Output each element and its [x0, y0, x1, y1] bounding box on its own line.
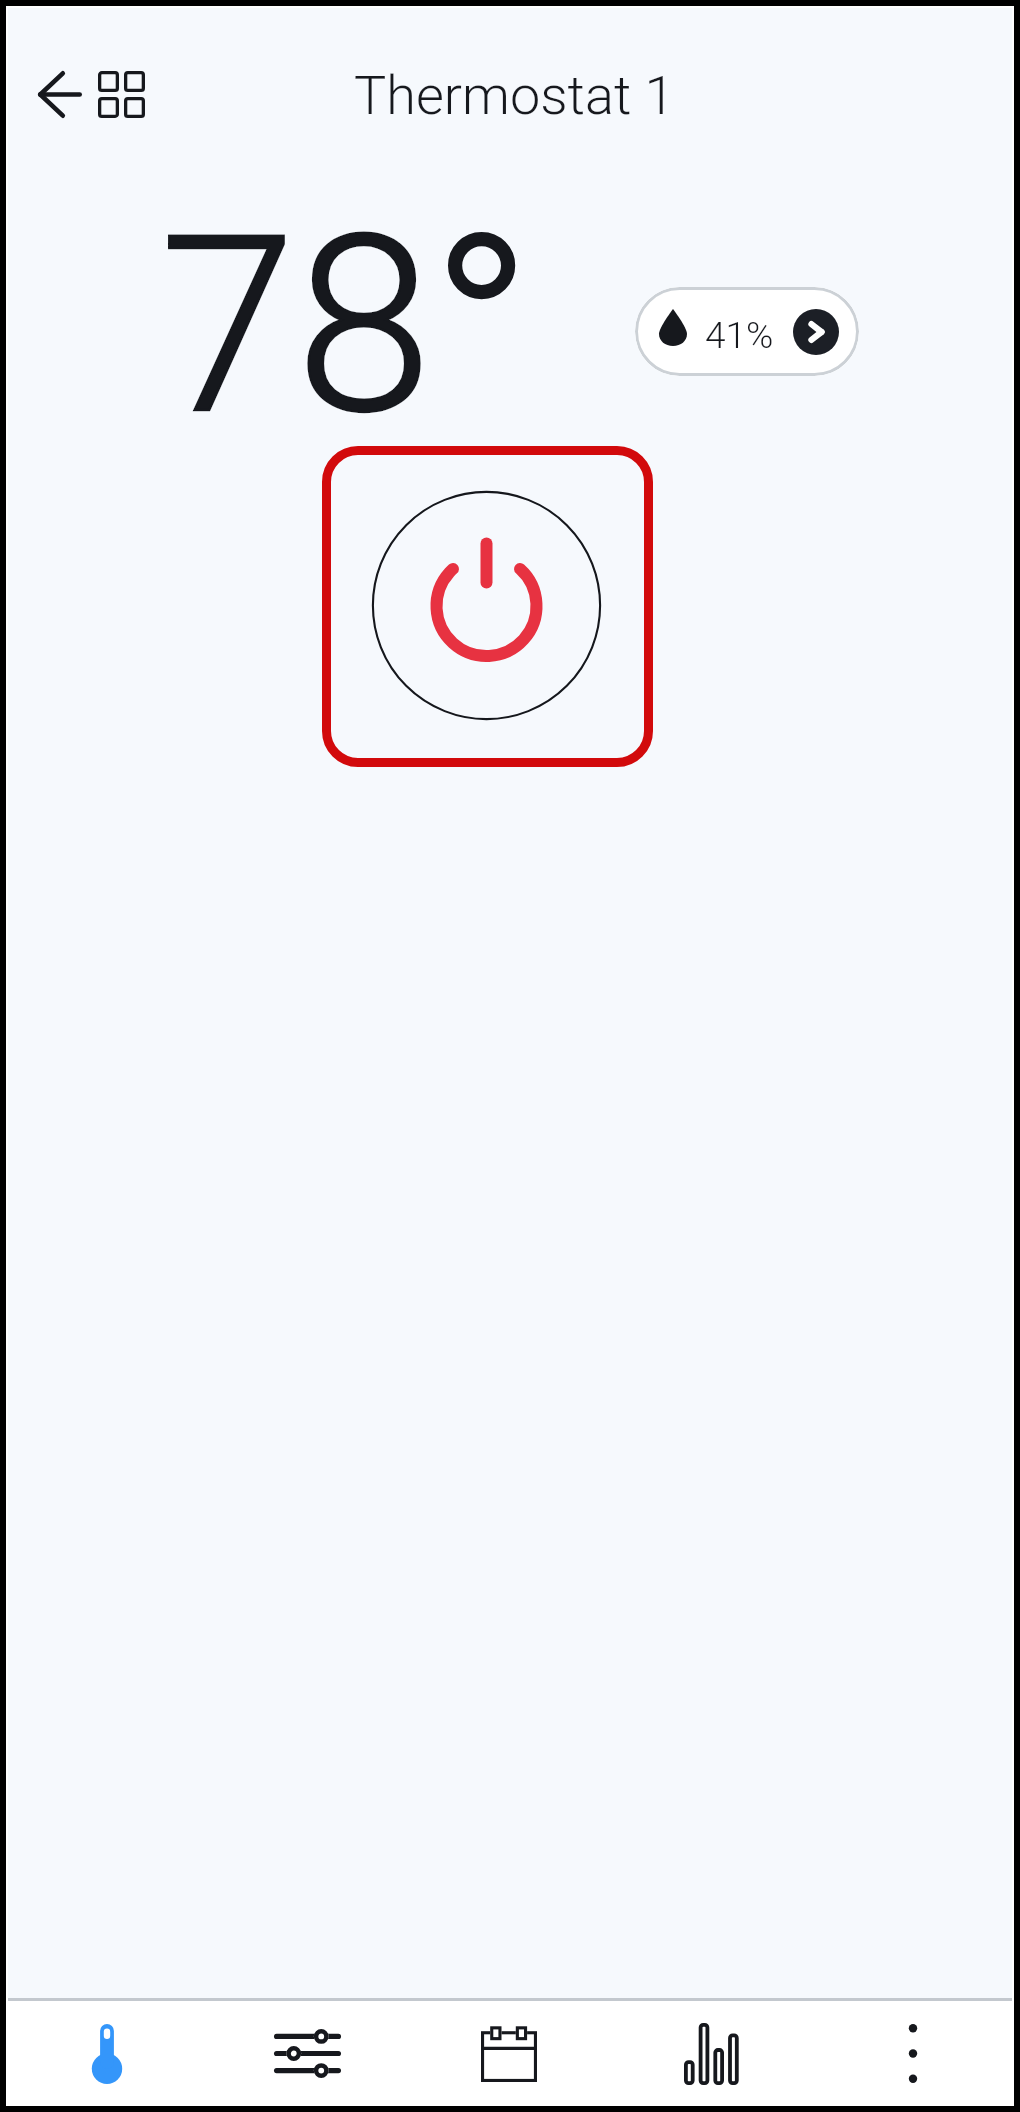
- button[interactable]: Humidity 41%: [635, 287, 859, 376]
- staticText: 78: [160, 183, 432, 470]
- button[interactable]: Back: [31, 65, 89, 124]
- button[interactable]: Power: [322, 446, 653, 767]
- staticText: 78: [160, 183, 432, 470]
- button[interactable]: Settings: [207, 2001, 408, 2106]
- staticText: Thermostat 1: [354, 64, 675, 127]
- staticText: 41%: [705, 314, 774, 357]
- button[interactable]: More options: [812, 2001, 1014, 2106]
- button[interactable]: All devices: [92, 65, 151, 124]
- button[interactable]: Statistics: [610, 2001, 812, 2106]
- button[interactable]: Temperature: [6, 2001, 207, 2106]
- button[interactable]: Schedule: [408, 2001, 610, 2106]
